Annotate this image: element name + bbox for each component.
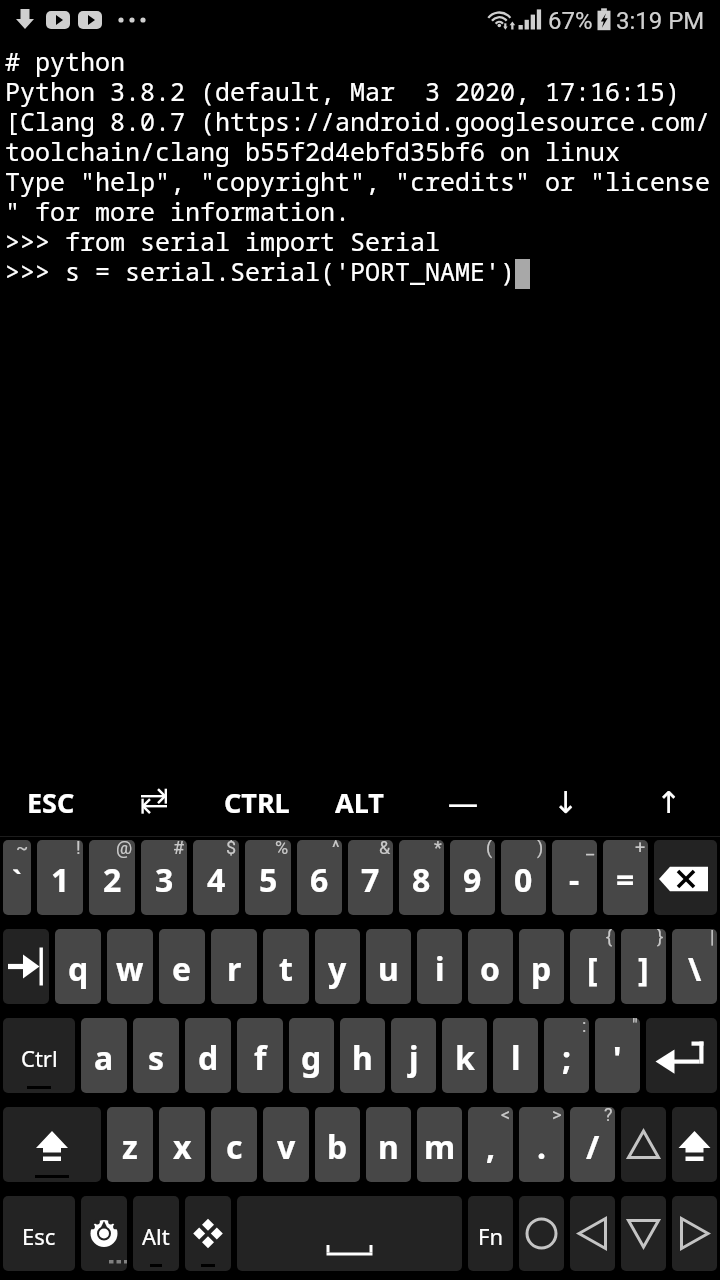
button[interactable]: Home xyxy=(519,1196,564,1271)
staticText: 5 xyxy=(259,858,278,902)
button[interactable]: Space xyxy=(237,1196,462,1271)
button[interactable]: Esc xyxy=(3,1196,75,1271)
staticText: k xyxy=(455,1036,475,1080)
staticText: 2 xyxy=(103,858,122,902)
button[interactable]: # python Python 3.8.2 (default, Mar 3 20… xyxy=(0,40,720,774)
button[interactable]: ~ xyxy=(3,840,31,915)
button[interactable]: ↓ xyxy=(514,774,617,830)
button[interactable]: Tab xyxy=(102,774,205,830)
button[interactable]: ! xyxy=(37,840,83,915)
button[interactable]: % xyxy=(245,840,291,915)
button[interactable]: s xyxy=(133,1018,179,1093)
button[interactable]: i xyxy=(417,929,462,1004)
staticText: 6 xyxy=(310,858,329,902)
staticText: [ xyxy=(587,947,598,991)
button[interactable]: < xyxy=(468,1107,513,1182)
button[interactable]: # xyxy=(141,840,187,915)
button[interactable]: ^ xyxy=(297,840,342,915)
button[interactable]: m xyxy=(417,1107,462,1182)
button[interactable]: : xyxy=(544,1018,589,1093)
button[interactable]: v xyxy=(263,1107,309,1182)
button[interactable]: _ xyxy=(552,840,597,915)
button[interactable]: e xyxy=(159,929,205,1004)
button[interactable]: Arrow right xyxy=(672,1196,717,1271)
button[interactable]: Arrow down xyxy=(621,1196,666,1271)
staticText: 0 xyxy=(514,858,533,902)
button[interactable]: | xyxy=(672,929,717,1004)
button[interactable]: ) xyxy=(501,840,546,915)
button[interactable]: a xyxy=(81,1018,127,1093)
button[interactable]: j xyxy=(391,1018,436,1093)
button[interactable]: r xyxy=(211,929,257,1004)
button[interactable]: z xyxy=(107,1107,153,1182)
button[interactable]: y xyxy=(315,929,360,1004)
button[interactable]: p xyxy=(519,929,564,1004)
button[interactable]: } xyxy=(621,929,666,1004)
button[interactable]: ( xyxy=(450,840,495,915)
button[interactable]: $ xyxy=(193,840,239,915)
button[interactable]: k xyxy=(442,1018,487,1093)
button[interactable]: o xyxy=(468,929,513,1004)
button[interactable]: — xyxy=(411,774,514,830)
button[interactable]: x xyxy=(159,1107,205,1182)
button[interactable]: f xyxy=(237,1018,283,1093)
button[interactable]: ? xyxy=(570,1107,615,1182)
staticText: m xyxy=(424,1125,456,1169)
button[interactable]: ESC xyxy=(0,774,102,830)
button[interactable]: u xyxy=(366,929,411,1004)
button[interactable]: Settings xyxy=(81,1196,127,1271)
button[interactable]: @ xyxy=(89,840,135,915)
button[interactable]: Alt xyxy=(133,1196,179,1271)
button[interactable]: > xyxy=(519,1107,564,1182)
button[interactable]: { xyxy=(570,929,615,1004)
staticText: 67% xyxy=(548,7,593,35)
button[interactable]: Arrow up xyxy=(621,1107,666,1182)
button[interactable]: q xyxy=(55,929,101,1004)
staticText: 1 xyxy=(51,858,70,902)
staticText: 3:19 PM xyxy=(616,7,705,35)
button[interactable]: h xyxy=(340,1018,385,1093)
button[interactable]: Ctrl xyxy=(3,1018,75,1093)
button[interactable]: l xyxy=(493,1018,538,1093)
button[interactable]: + xyxy=(603,840,648,915)
button[interactable]: g xyxy=(289,1018,334,1093)
button[interactable]: Shift xyxy=(672,1107,717,1182)
button[interactable]: Arrow left xyxy=(570,1196,615,1271)
staticText: o xyxy=(480,947,501,991)
staticText: @ xyxy=(116,840,133,858)
staticText: # python Python 3.8.2 (default, Mar 3 20… xyxy=(5,44,711,288)
button[interactable]: ALT xyxy=(308,774,411,830)
staticText: 9 xyxy=(463,858,482,902)
staticText: ` xyxy=(12,862,22,897)
staticText: f xyxy=(254,1036,267,1080)
button[interactable]: t xyxy=(263,929,309,1004)
button[interactable]: Tab xyxy=(3,929,49,1004)
button[interactable]: Backspace xyxy=(654,840,717,915)
staticText: ^ xyxy=(332,840,340,858)
button[interactable]: & xyxy=(348,840,393,915)
staticText: # xyxy=(173,840,185,858)
button[interactable]: b xyxy=(315,1107,360,1182)
button[interactable]: CTRL xyxy=(205,774,308,830)
staticText: ~ xyxy=(16,840,29,858)
button[interactable]: Switch keyboard xyxy=(185,1196,231,1271)
staticText: v xyxy=(277,1125,296,1169)
button[interactable]: Shift xyxy=(3,1107,101,1182)
staticText: ; xyxy=(562,1036,572,1080)
button[interactable]: Enter xyxy=(646,1018,717,1093)
button[interactable]: Fn xyxy=(468,1196,513,1271)
button[interactable]: n xyxy=(366,1107,411,1182)
button[interactable]: " xyxy=(595,1018,640,1093)
button[interactable]: c xyxy=(211,1107,257,1182)
staticText: $ xyxy=(226,840,237,858)
staticText: Alt xyxy=(142,1221,170,1251)
staticText: | xyxy=(710,929,715,947)
button[interactable]: * xyxy=(399,840,444,915)
staticText: x xyxy=(173,1125,192,1169)
staticText: / xyxy=(586,1125,600,1169)
staticText: + xyxy=(635,840,646,858)
button[interactable]: w xyxy=(107,929,153,1004)
staticText: CTRL xyxy=(224,784,290,821)
button[interactable]: d xyxy=(185,1018,231,1093)
button[interactable]: ↑ xyxy=(617,774,720,830)
